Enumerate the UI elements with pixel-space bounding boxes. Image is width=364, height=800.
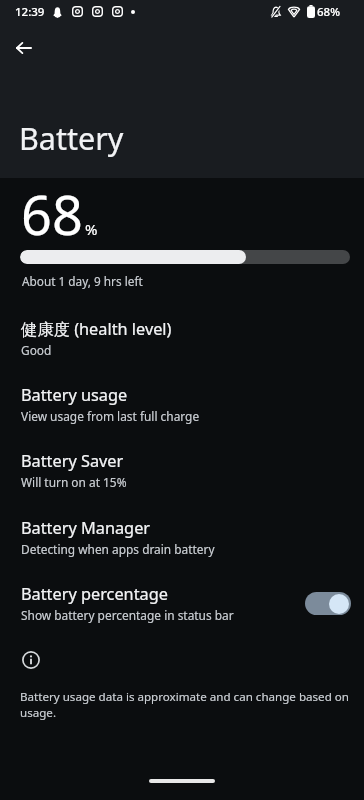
staticText: View usage from last full charge <box>21 408 200 424</box>
staticText: Show battery percentage in status bar <box>21 607 234 623</box>
button[interactable]: Battery usage <box>0 376 364 440</box>
button[interactable]: 健康度 (health level) <box>0 310 364 374</box>
staticText: About 1 day, 9 hrs left <box>22 273 143 289</box>
staticText: 68% <box>317 4 340 20</box>
staticText: 68 <box>21 177 83 251</box>
button[interactable]: Back <box>2 26 46 70</box>
staticText: Battery usage data is approximate and ca… <box>20 689 364 720</box>
staticText: Battery percentage <box>21 583 168 605</box>
staticText: 健康度 (health level) <box>21 318 172 340</box>
staticText: Detecting when apps drain battery <box>21 541 215 557</box>
button[interactable]: Battery Manager <box>0 509 364 573</box>
staticText: Good <box>21 342 52 358</box>
staticText: Battery Saver <box>21 450 124 472</box>
staticText: Battery <box>19 117 124 159</box>
staticText: Battery usage <box>21 384 128 406</box>
staticText: Will turn on at 15% <box>21 474 127 490</box>
staticText: Battery Manager <box>21 517 151 539</box>
button[interactable]: Battery percentage <box>0 575 364 639</box>
button[interactable]: Battery Saver <box>0 442 364 506</box>
staticText: % <box>85 219 98 239</box>
staticText: 12:39 <box>15 4 45 20</box>
